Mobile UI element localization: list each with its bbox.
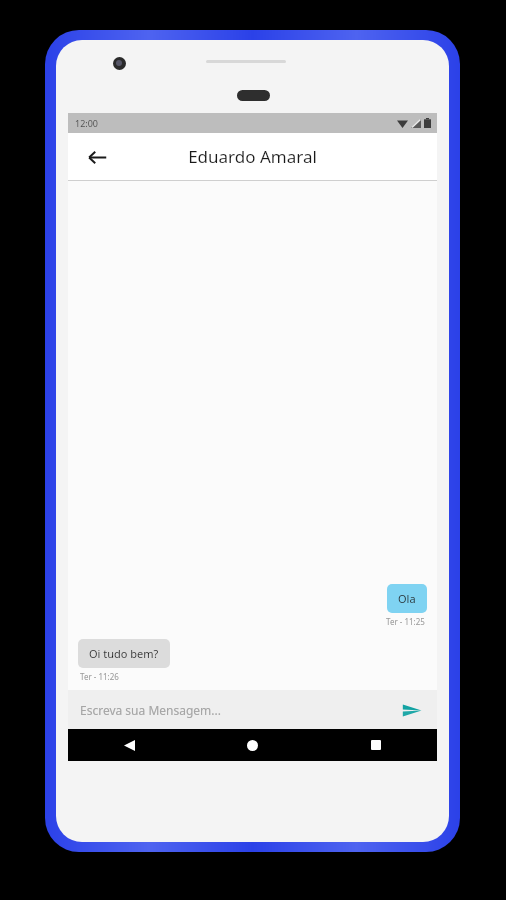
staticText: Ola [398,591,416,606]
staticText: 12:00 [75,117,99,129]
button[interactable]: Home [191,729,314,761]
staticText: Escreva sua Mensagem... [80,702,399,718]
button[interactable]: Recent apps [314,729,437,761]
staticText: Ter - 11:26 [80,671,119,682]
button[interactable]: Send [399,697,425,723]
button[interactable]: Escreva sua Mensagem... [68,690,437,729]
button[interactable]: Back [68,729,191,761]
staticText: Oi tudo bem? [89,646,159,661]
button[interactable]: Oi tudo bem? [78,639,170,668]
button[interactable]: Back [82,142,112,172]
staticText: Eduardo Amaral [188,145,317,168]
button[interactable]: Ola [387,584,427,613]
staticText: Ter - 11:25 [386,616,425,627]
